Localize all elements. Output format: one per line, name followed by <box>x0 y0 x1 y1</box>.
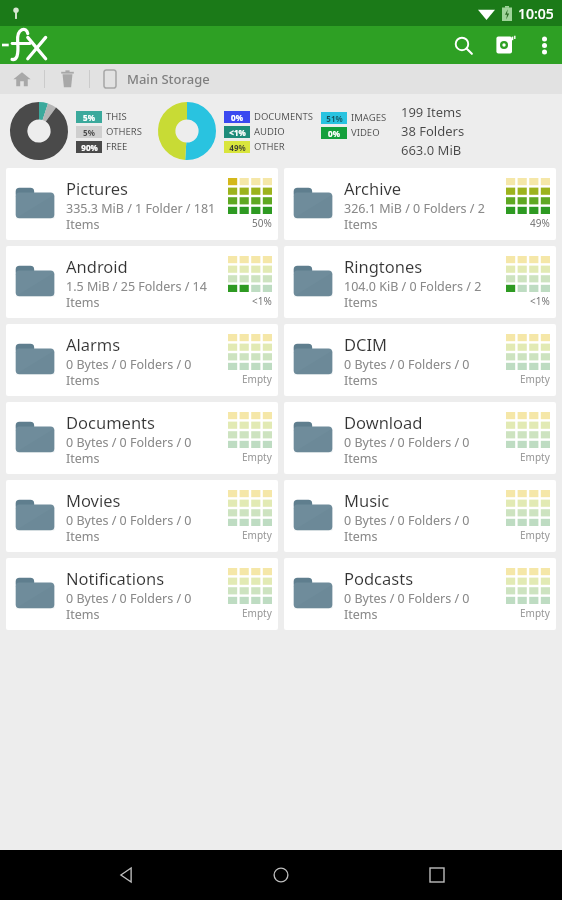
button[interactable]: Search <box>442 26 484 64</box>
button[interactable]: Alarms <box>6 324 278 396</box>
staticText: 1.5 MiB / 25 Folders / 14 Items <box>66 278 226 310</box>
staticText: 51% <box>326 113 343 124</box>
button[interactable]: Ringtones <box>284 246 556 318</box>
staticText: Alarms <box>66 333 121 355</box>
staticText: 663.0 MiB <box>401 141 462 159</box>
button[interactable]: Home <box>0 64 44 94</box>
button[interactable]: Download <box>284 402 556 474</box>
staticText: 0 Bytes / 0 Folders / 0 Items <box>344 512 504 544</box>
staticText: 0 Bytes / 0 Folders / 0 Items <box>344 434 504 466</box>
staticText: Empty <box>520 606 550 620</box>
staticText: <1% <box>530 294 550 308</box>
button[interactable]: Podcasts <box>284 558 556 630</box>
staticText: Empty <box>242 450 272 464</box>
staticText: 335.3 MiB / 1 Folder / 181 Items <box>66 200 226 232</box>
staticText: 10:05 <box>518 4 554 23</box>
staticText: Pictures <box>66 177 129 199</box>
staticText: 0 Bytes / 0 Folders / 0 Items <box>66 590 226 622</box>
staticText: Documents <box>66 411 155 433</box>
staticText: Podcasts <box>344 567 414 589</box>
button[interactable]: More options <box>526 26 562 64</box>
staticText: 49% <box>530 216 550 230</box>
button[interactable]: Notifications <box>6 558 278 630</box>
button[interactable]: Recent apps <box>407 850 467 900</box>
staticText: Archive <box>344 177 402 199</box>
staticText: 199 Items <box>401 103 462 121</box>
staticText: Music <box>344 489 390 511</box>
staticText: <1% <box>252 294 272 308</box>
button[interactable]: Archive <box>284 168 556 240</box>
staticText: Empty <box>520 450 550 464</box>
staticText: Download <box>344 411 423 433</box>
staticText: Empty <box>242 606 272 620</box>
button[interactable]: Trash <box>45 64 89 94</box>
staticText: 0% <box>328 128 340 139</box>
button[interactable]: Main Storage <box>90 64 210 94</box>
staticText: 49% <box>229 142 246 153</box>
staticText: 104.0 KiB / 0 Folders / 2 Items <box>344 278 504 310</box>
button[interactable]: Storage settings <box>484 26 526 64</box>
button[interactable]: Documents <box>6 402 278 474</box>
button[interactable]: Android <box>6 246 278 318</box>
staticText: 0 Bytes / 0 Folders / 0 Items <box>66 434 226 466</box>
staticText: OTHERS <box>106 125 142 138</box>
staticText: 326.1 MiB / 0 Folders / 2 Items <box>344 200 504 232</box>
button[interactable]: Back <box>96 850 156 900</box>
staticText: Main Storage <box>127 70 210 88</box>
staticText: FREE <box>106 140 128 153</box>
staticText: 0 Bytes / 0 Folders / 0 Items <box>344 590 504 622</box>
staticText: Android <box>66 255 128 277</box>
staticText: 0 Bytes / 0 Folders / 0 Items <box>66 356 226 388</box>
staticText: 5% <box>83 112 95 123</box>
button[interactable]: Movies <box>6 480 278 552</box>
staticText: 0 Bytes / 0 Folders / 0 Items <box>344 356 504 388</box>
button[interactable]: Pictures <box>6 168 278 240</box>
staticText: 0% <box>231 112 243 123</box>
staticText: 0 Bytes / 0 Folders / 0 Items <box>66 512 226 544</box>
staticText: Ringtones <box>344 255 423 277</box>
staticText: 90% <box>81 142 98 153</box>
staticText: DOCUMENTS <box>254 110 313 123</box>
button[interactable]: DCIM <box>284 324 556 396</box>
staticText: AUDIO <box>254 125 285 138</box>
staticText: Notifications <box>66 567 165 589</box>
staticText: IMAGES <box>351 111 387 124</box>
staticText: Empty <box>520 372 550 386</box>
staticText: <1% <box>229 127 246 138</box>
button[interactable]: Music <box>284 480 556 552</box>
staticText: VIDEO <box>351 126 380 139</box>
staticText: THIS <box>106 110 127 123</box>
staticText: Empty <box>242 372 272 386</box>
staticText: 38 Folders <box>401 122 465 140</box>
staticText: 50% <box>252 216 272 230</box>
staticText: Empty <box>520 528 550 542</box>
staticText: Empty <box>242 528 272 542</box>
button[interactable]: FX home <box>2 26 58 64</box>
button[interactable]: Home <box>251 850 311 900</box>
staticText: Movies <box>66 489 121 511</box>
staticText: DCIM <box>344 333 388 355</box>
staticText: OTHER <box>254 140 285 153</box>
staticText: 5% <box>83 127 95 138</box>
